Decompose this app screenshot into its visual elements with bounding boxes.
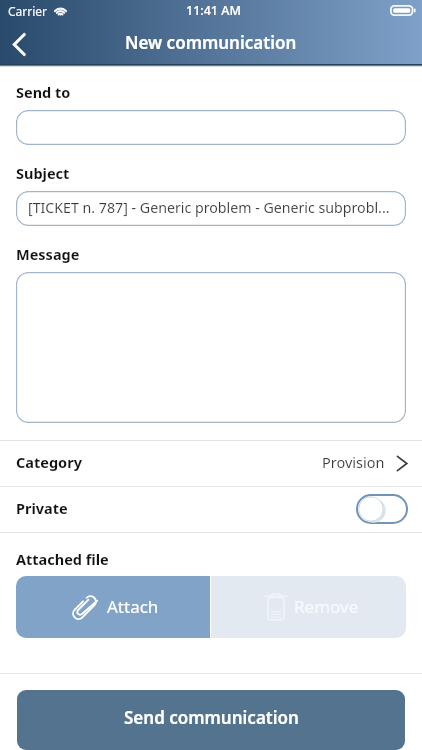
staticText: Attach — [107, 595, 159, 618]
button[interactable]: Remove — [211, 576, 406, 638]
staticText: [TICKET n. 787] - Generic problem - Gene… — [28, 198, 390, 217]
staticText: Attached file — [16, 549, 109, 569]
button[interactable] — [16, 110, 406, 145]
staticText: Category — [16, 452, 82, 472]
button[interactable]: Private — [0, 487, 422, 532]
staticText: Subject — [16, 163, 70, 183]
button[interactable]: [TICKET n. 787] - Generic problem - Gene… — [16, 191, 406, 226]
button[interactable]: Private toggle — [356, 494, 408, 524]
staticText: Send communication — [124, 706, 299, 729]
staticText: Carrier — [8, 3, 48, 19]
button[interactable]: Category — [0, 441, 422, 487]
button[interactable]: Attach — [16, 576, 210, 638]
staticText: Message — [16, 244, 80, 264]
staticText: Remove — [294, 595, 359, 618]
staticText: New communication — [125, 31, 297, 54]
button[interactable] — [16, 272, 406, 423]
staticText: Send to — [16, 82, 71, 102]
staticText: Private — [16, 498, 68, 518]
staticText: Provision — [322, 452, 385, 472]
staticText: 11:41 AM — [186, 2, 241, 19]
button[interactable]: Send communication — [17, 690, 405, 750]
button[interactable]: Back — [0, 23, 40, 63]
